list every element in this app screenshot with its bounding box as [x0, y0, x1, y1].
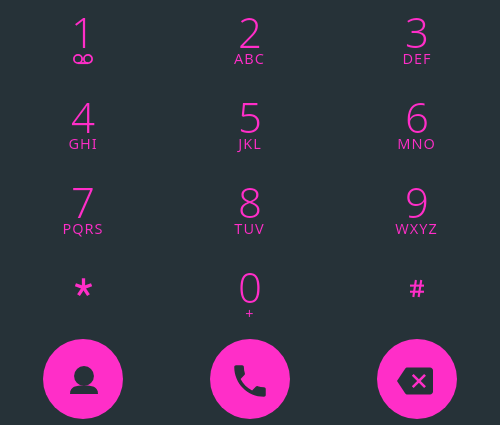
- button[interactable]: Call: [210, 339, 290, 419]
- staticText: 5: [238, 88, 262, 138]
- staticText: PQRS: [62, 218, 104, 238]
- button[interactable]: 8: [166, 170, 333, 255]
- staticText: JKL: [238, 133, 262, 153]
- button[interactable]: star: [0, 255, 166, 340]
- staticText: DEF: [402, 48, 432, 68]
- button[interactable]: Contacts: [43, 339, 123, 419]
- button[interactable]: 5: [166, 85, 333, 170]
- staticText: GHI: [68, 133, 98, 153]
- button[interactable]: 7: [0, 170, 166, 255]
- staticText: +: [245, 303, 255, 323]
- button[interactable]: 9: [333, 170, 500, 255]
- staticText: MNO: [397, 133, 436, 153]
- staticText: 9: [405, 173, 429, 223]
- staticText: 6: [405, 88, 429, 138]
- button[interactable]: 0: [166, 255, 333, 340]
- staticText: 8: [238, 173, 262, 223]
- staticText: WXYZ: [395, 218, 438, 238]
- staticText: 1: [71, 3, 95, 53]
- button[interactable]: 2: [166, 0, 333, 85]
- button[interactable]: 3: [333, 0, 500, 85]
- staticText: 3: [405, 3, 429, 53]
- staticText: 0: [238, 258, 262, 308]
- staticText: TUV: [234, 218, 265, 238]
- button[interactable]: pound: [333, 255, 500, 340]
- staticText: 4: [71, 88, 95, 138]
- button[interactable]: Backspace: [377, 339, 457, 419]
- button[interactable]: 4: [0, 85, 166, 170]
- button[interactable]: 6: [333, 85, 500, 170]
- button[interactable]: 1: [0, 0, 166, 85]
- staticText: 7: [71, 173, 95, 223]
- staticText: ABC: [234, 48, 265, 68]
- staticText: 2: [238, 3, 262, 53]
